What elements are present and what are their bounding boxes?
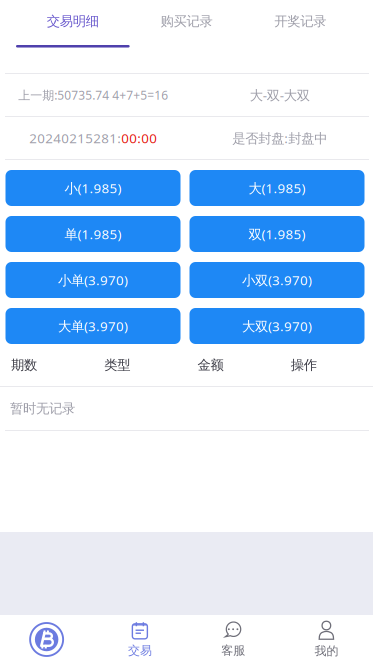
button[interactable]: 交易 (93, 615, 186, 664)
button[interactable]: 双(1.985) (189, 216, 364, 252)
staticText: 类型 (104, 357, 130, 373)
staticText: 交易 (128, 643, 152, 658)
staticText: 开奖记录 (274, 13, 326, 29)
staticText: 单(1.985) (64, 225, 121, 243)
staticText: 金额 (197, 357, 223, 373)
button[interactable]: 开奖记录 (243, 0, 357, 73)
button[interactable]: 交易明细 (16, 0, 130, 73)
staticText: 00:00 (121, 129, 157, 147)
button[interactable]: 客服 (186, 615, 280, 664)
staticText: 客服 (221, 643, 245, 658)
staticText: 小双(3.970) (242, 271, 312, 289)
staticText: 交易明细 (47, 13, 99, 29)
button[interactable]: 小单(3.970) (5, 262, 180, 298)
button[interactable]: 我的 (280, 615, 373, 664)
staticText: 双(1.985) (248, 225, 305, 243)
button[interactable]: 单(1.985) (5, 216, 180, 252)
staticText: 大双(3.970) (242, 317, 312, 335)
staticText: 期数 (11, 357, 37, 373)
button[interactable]: 大单(3.970) (5, 308, 180, 344)
staticText: 暂时无记录 (10, 400, 75, 417)
staticText: 大(1.985) (248, 179, 305, 197)
staticText: 是否封盘:封盘中 (232, 129, 327, 147)
staticText: 上一期:50735.74 4+7+5=16 (18, 87, 168, 103)
button[interactable]: 购买记录 (130, 0, 243, 73)
button[interactable]: 小双(3.970) (189, 262, 364, 298)
staticText: 我的 (314, 644, 338, 658)
staticText: 大-双-大双 (250, 86, 310, 104)
staticText: 小单(3.970) (58, 271, 128, 289)
staticText: 20240215281: (29, 129, 121, 147)
button[interactable]: 大双(3.970) (189, 308, 364, 344)
staticText: 购买记录 (160, 13, 212, 29)
button[interactable]: 首页 (0, 615, 93, 664)
button[interactable]: 小(1.985) (5, 170, 180, 206)
button[interactable]: 大(1.985) (189, 170, 364, 206)
staticText: 操作 (291, 357, 317, 373)
staticText: 大单(3.970) (58, 317, 128, 335)
staticText: 小(1.985) (64, 179, 121, 197)
